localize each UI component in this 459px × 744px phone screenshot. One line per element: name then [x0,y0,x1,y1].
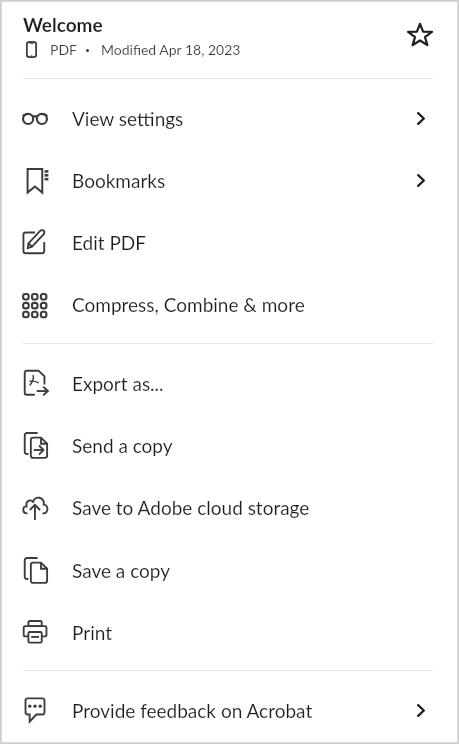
staticText: Save a copy [72,559,171,582]
staticText: Bookmarks [72,169,166,192]
button[interactable]: Add to starred [402,17,438,53]
button[interactable]: Send a copy [0,414,459,476]
staticText: Export as... [72,372,164,395]
button[interactable]: View settings [0,87,459,149]
staticText: Save to Adobe cloud storage [72,496,310,519]
button[interactable]: Provide feedback on Acrobat [0,679,459,741]
button[interactable]: Compress, Combine & more [0,273,459,335]
staticText: Provide feedback on Acrobat [72,699,313,722]
button[interactable]: Save to Adobe cloud storage [0,476,459,538]
button[interactable]: Edit PDF [0,211,459,273]
button[interactable]: Bookmarks [0,149,459,211]
staticText: Modified Apr 18, 2023 [101,41,241,58]
staticText: PDF [50,41,77,58]
button[interactable]: Export as... [0,352,459,414]
staticText: Edit PDF [72,231,147,254]
staticText: Compress, Combine & more [72,293,305,316]
staticText: Send a copy [72,434,173,457]
staticText: Welcome [23,13,103,36]
staticText: View settings [72,107,184,130]
button[interactable]: Print [0,601,459,663]
staticText: Print [72,621,112,644]
button[interactable]: Save a copy [0,539,459,601]
